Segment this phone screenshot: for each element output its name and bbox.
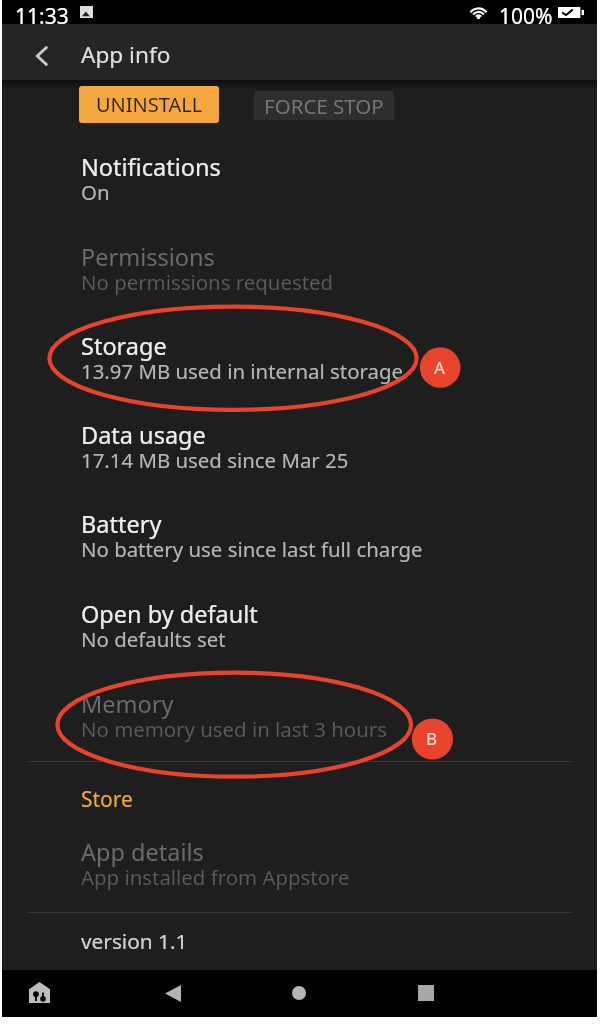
staticText: 11:33 (15, 2, 69, 26)
staticText: No battery use since last full charge (81, 535, 423, 563)
button[interactable]: Smart home (19, 972, 59, 1012)
staticText: No defaults set (81, 625, 226, 653)
staticText: 13.97 MB used in internal storage (81, 357, 404, 385)
button[interactable]: Recent apps (406, 973, 446, 1013)
staticText: version 1.1 (81, 927, 188, 955)
staticText: Data usage (81, 419, 206, 451)
staticText: App details (81, 836, 204, 868)
staticText: 17.14 MB used since Mar 25 (81, 446, 349, 474)
staticText: No memory used in last 3 hours (81, 715, 387, 743)
staticText: Battery (81, 508, 162, 540)
staticText: Open by default (81, 598, 258, 630)
staticText: UNINSTALL (96, 91, 203, 118)
staticText: App installed from Appstore (81, 863, 350, 891)
staticText: 100% (499, 2, 553, 26)
staticText: App info (81, 39, 171, 70)
button[interactable]: UNINSTALL (79, 86, 219, 123)
button[interactable]: Back (153, 973, 193, 1013)
staticText: Memory (81, 688, 174, 720)
staticText: No permissions requested (81, 268, 334, 296)
staticText: Notifications (81, 151, 221, 183)
staticText: Store (81, 785, 133, 814)
button[interactable]: Store (2, 764, 597, 814)
button[interactable]: Storage (2, 316, 597, 401)
staticText: B (426, 727, 438, 750)
staticText: Permissions (81, 241, 215, 273)
button[interactable]: Permissions (2, 227, 597, 312)
button[interactable]: App details (2, 822, 597, 907)
staticText: Storage (81, 330, 167, 362)
staticText: A (434, 356, 445, 379)
button[interactable]: Home (279, 973, 319, 1013)
button[interactable]: Navigate up (22, 36, 62, 76)
button[interactable]: Data usage (2, 405, 597, 490)
button[interactable]: Notifications (2, 137, 597, 222)
button[interactable]: Memory (2, 674, 597, 759)
button[interactable]: Open by default (2, 584, 597, 669)
staticText: FORCE STOP (264, 92, 384, 120)
staticText: On (81, 178, 110, 206)
button[interactable]: FORCE STOP (254, 91, 394, 120)
button[interactable]: Battery (2, 494, 597, 579)
